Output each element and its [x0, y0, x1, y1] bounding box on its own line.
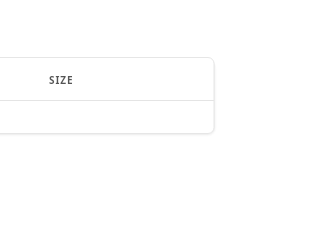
button[interactable]	[0, 101, 214, 134]
button[interactable]: SIZE	[0, 57, 214, 100]
staticText: SIZE	[49, 73, 74, 87]
